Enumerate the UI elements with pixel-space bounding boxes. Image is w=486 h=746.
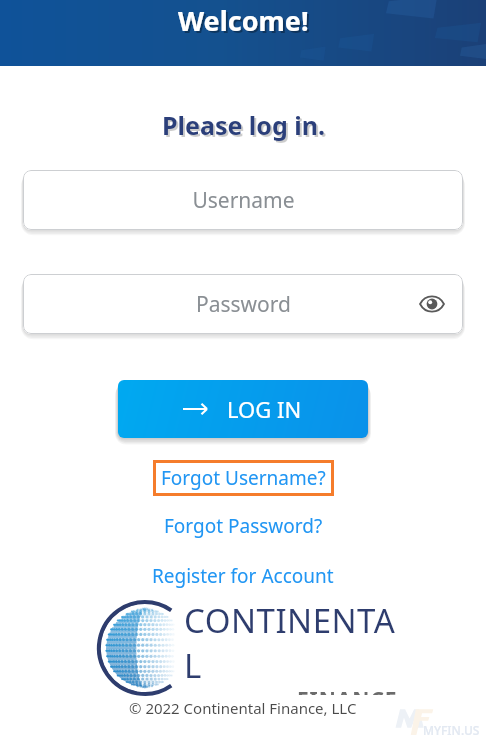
- button[interactable]: Forgot Password?: [156, 510, 331, 542]
- staticText: Welcome!: [180, 4, 311, 41]
- button[interactable]: Username: [23, 170, 463, 230]
- staticText: Username: [192, 186, 295, 215]
- button[interactable]: Forgot Username?: [153, 460, 334, 496]
- staticText: Forgot Password?: [164, 513, 323, 539]
- staticText: Register for Account: [152, 563, 334, 589]
- staticText: MYFIN.US: [423, 722, 480, 738]
- button[interactable]: LOG IN: [118, 380, 368, 438]
- staticText: Please log in.: [164, 110, 327, 144]
- staticText: Please log in.: [162, 108, 325, 142]
- staticText: Welcome!: [178, 2, 309, 39]
- button[interactable]: Show password: [415, 287, 449, 321]
- staticText: FINANCE: [297, 685, 398, 695]
- staticText: Forgot Username?: [161, 465, 326, 491]
- staticText: LOG IN: [227, 394, 302, 424]
- staticText: © 2022 Continental Finance, LLC: [129, 698, 357, 718]
- button[interactable]: Register for Account: [144, 560, 342, 592]
- staticText: Password: [196, 290, 291, 319]
- button[interactable]: Password: [23, 274, 463, 334]
- staticText: CONTINENTAL: [184, 598, 398, 688]
